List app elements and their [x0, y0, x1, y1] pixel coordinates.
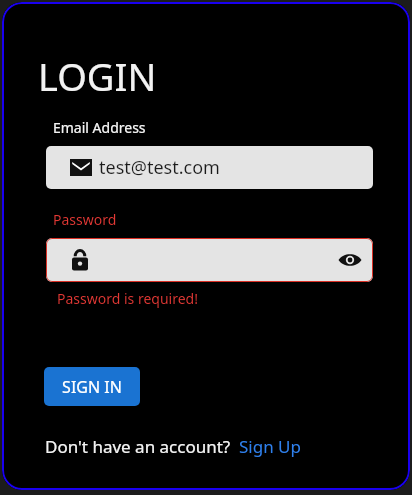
button[interactable]: Show password — [46, 238, 373, 282]
staticText: SIGN IN — [62, 376, 122, 398]
staticText: Sign Up — [239, 435, 301, 458]
staticText: Email Address — [53, 118, 146, 137]
button[interactable]: test@test.com — [46, 146, 373, 189]
staticText: Password is required! — [57, 289, 198, 308]
button[interactable]: Sign Up — [239, 435, 301, 458]
button[interactable]: SIGN IN — [44, 367, 140, 406]
staticText: test@test.com — [99, 155, 220, 180]
staticText: LOGIN — [38, 50, 157, 102]
staticText: Don't have an account? — [45, 435, 231, 458]
staticText: Password — [53, 210, 117, 229]
button[interactable]: Show password — [332, 242, 368, 278]
